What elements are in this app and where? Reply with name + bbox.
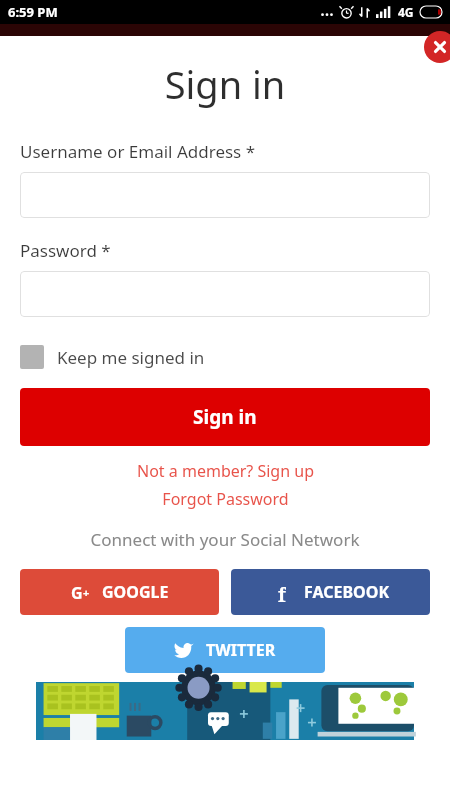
staticText: Sign in [193, 404, 257, 430]
staticText: Forgot Password [162, 488, 289, 510]
staticText: FACEBOOK [304, 581, 390, 603]
staticText: f [278, 582, 286, 602]
button[interactable]: TWITTER [125, 627, 325, 673]
staticText: Sign in [0, 58, 450, 110]
staticText: G [71, 582, 83, 602]
staticText: Password * [20, 239, 111, 262]
button[interactable]: Forgot Password [0, 488, 450, 510]
button[interactable] [20, 271, 430, 317]
button[interactable] [20, 172, 430, 218]
staticText: 4G [398, 4, 414, 20]
staticText: + [83, 585, 90, 600]
button[interactable]: G [20, 569, 219, 615]
staticText: 6:59 PM [8, 3, 58, 21]
button[interactable]: Not a member? Sign up [0, 460, 450, 482]
staticText: Keep me signed in [57, 346, 205, 369]
staticText: Not a member? Sign up [137, 460, 314, 482]
staticText: TWITTER [206, 639, 276, 661]
staticText: Username or Email Address * [20, 140, 256, 163]
staticText: Connect with your Social Network [0, 528, 450, 551]
button[interactable]: Keep me signed in [20, 345, 205, 369]
staticText: GOOGLE [102, 581, 169, 603]
button[interactable]: f [231, 569, 430, 615]
button[interactable]: Close [424, 31, 450, 63]
button[interactable]: Sign in [20, 388, 430, 446]
